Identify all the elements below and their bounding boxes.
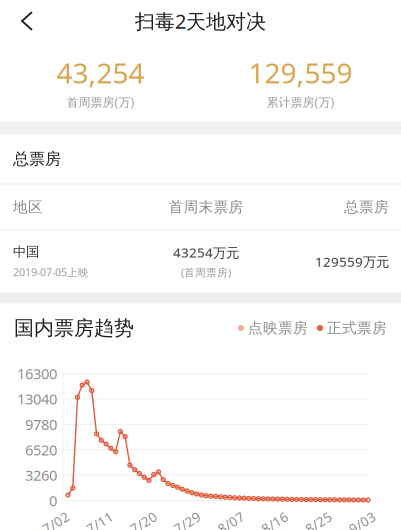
button[interactable]: Back <box>0 0 48 42</box>
staticText: (首周票房) <box>181 265 231 279</box>
staticText: 7/29 <box>173 514 202 530</box>
staticText: 129559万元 <box>315 253 389 270</box>
staticText: 地区 <box>13 198 43 216</box>
staticText: 16300 <box>17 364 57 383</box>
staticText: 13040 <box>17 389 57 409</box>
staticText: 首周票房(万) <box>66 94 134 110</box>
staticText: 中国 <box>13 244 39 260</box>
staticText: 2019-07-05上映 <box>13 265 89 279</box>
staticText: 点映票房 <box>244 319 308 337</box>
staticText: 国内票房趋势 <box>14 316 134 340</box>
staticText: 7/11 <box>85 514 114 530</box>
staticText: 总票房 <box>13 149 61 169</box>
staticText: 129,559 <box>248 54 352 91</box>
staticText: 总票房 <box>344 198 389 216</box>
staticText: 43254万元 <box>173 244 239 261</box>
staticText: 正式票房 <box>323 319 387 337</box>
staticText: 8/16 <box>260 514 289 530</box>
staticText: 8/25 <box>304 514 333 530</box>
staticText: 首周末票房 <box>168 198 243 216</box>
staticText: 6520 <box>25 440 57 459</box>
staticText: 累计票房(万) <box>266 94 334 110</box>
staticText: 3260 <box>25 465 57 485</box>
staticText: 9780 <box>25 415 57 434</box>
staticText: 扫毒2天地对决 <box>135 8 266 34</box>
staticText: 43,254 <box>56 54 144 91</box>
staticText: 0 <box>49 491 57 510</box>
staticText: 9/03 <box>348 514 377 530</box>
staticText: 8/07 <box>216 514 245 530</box>
staticText: 7/02 <box>41 514 70 530</box>
staticText: 7/20 <box>129 514 158 530</box>
